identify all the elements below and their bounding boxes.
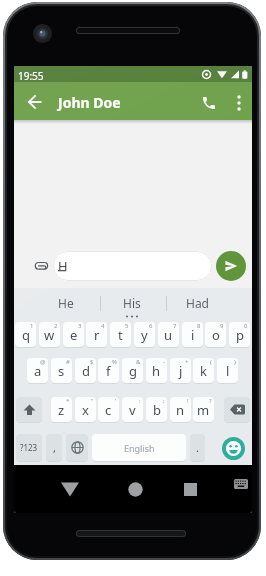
staticText: m xyxy=(197,401,210,419)
button[interactable]: s xyxy=(51,358,72,383)
button[interactable] xyxy=(23,90,47,114)
button[interactable]: English xyxy=(92,434,186,461)
staticText: x xyxy=(82,401,89,419)
button[interactable] xyxy=(58,477,82,501)
staticText: + xyxy=(185,358,189,366)
staticText: g xyxy=(129,362,137,380)
staticText: z xyxy=(58,401,65,419)
button[interactable]: i xyxy=(182,322,203,347)
button[interactable]: f xyxy=(98,358,119,383)
staticText: d xyxy=(82,362,90,380)
staticText: English xyxy=(124,442,155,454)
staticText: % xyxy=(112,358,117,366)
staticText: # xyxy=(66,358,70,366)
staticText: e xyxy=(70,326,78,344)
button[interactable]: p xyxy=(229,322,250,347)
staticText: @ xyxy=(40,358,46,366)
staticText: 0 xyxy=(244,322,248,330)
staticText: ( xyxy=(210,358,212,366)
staticText: r xyxy=(94,326,100,344)
staticText: ' xyxy=(115,397,117,405)
button[interactable]: w xyxy=(39,322,60,347)
button[interactable]: , xyxy=(46,434,62,461)
staticText: 19:55 xyxy=(18,69,44,83)
button[interactable]: m xyxy=(193,397,214,422)
button[interactable] xyxy=(216,251,246,281)
button[interactable]: c xyxy=(98,397,119,422)
button[interactable]: e xyxy=(63,322,84,347)
staticText: $ xyxy=(90,358,94,366)
button[interactable]: n xyxy=(170,397,191,422)
button[interactable]: H xyxy=(53,251,212,281)
button[interactable]: q xyxy=(15,322,36,347)
button[interactable]: j xyxy=(170,358,191,383)
staticText: q xyxy=(22,326,30,344)
button[interactable] xyxy=(227,91,251,115)
staticText: His xyxy=(123,295,141,311)
button[interactable]: . xyxy=(190,434,205,461)
staticText: 7 xyxy=(173,322,177,330)
button[interactable] xyxy=(123,477,147,501)
staticText: - xyxy=(163,358,165,366)
button[interactable]: l xyxy=(217,358,238,383)
button[interactable] xyxy=(178,477,202,501)
staticText: y xyxy=(141,326,148,344)
staticText: 8 xyxy=(197,322,201,330)
button[interactable]: d xyxy=(75,358,96,383)
button[interactable]: u xyxy=(158,322,179,347)
button[interactable]: ?123 xyxy=(16,434,42,461)
staticText: Had xyxy=(186,295,210,311)
staticText: w xyxy=(44,326,55,344)
button[interactable]: h xyxy=(146,358,167,383)
button[interactable]: r xyxy=(86,322,107,347)
staticText: . xyxy=(196,440,199,455)
button[interactable] xyxy=(16,397,42,422)
button[interactable]: a xyxy=(27,358,48,383)
staticText: k xyxy=(200,362,207,380)
staticText: t xyxy=(118,326,123,344)
staticText: John Doe xyxy=(58,93,121,112)
staticText: " xyxy=(91,397,94,405)
staticText: b xyxy=(153,401,161,419)
button[interactable]: k xyxy=(193,358,214,383)
staticText: ? xyxy=(209,397,212,405)
staticText: f xyxy=(106,362,111,380)
staticText: & xyxy=(136,358,141,366)
staticText: : xyxy=(139,397,141,405)
staticText: * xyxy=(66,397,70,405)
button[interactable] xyxy=(232,476,250,492)
button[interactable] xyxy=(222,437,245,460)
button[interactable]: o xyxy=(205,322,226,347)
staticText: v xyxy=(129,401,136,419)
staticText: ; xyxy=(163,397,165,405)
staticText: u xyxy=(164,326,173,344)
button[interactable]: y xyxy=(134,322,155,347)
staticText: 2 xyxy=(54,322,58,330)
staticText: p xyxy=(236,326,244,344)
staticText: 4 xyxy=(101,322,105,330)
button[interactable]: x xyxy=(75,397,96,422)
button[interactable] xyxy=(224,397,250,422)
staticText: He xyxy=(58,295,74,311)
button[interactable]: b xyxy=(146,397,167,422)
staticText: c xyxy=(105,401,112,419)
button[interactable]: v xyxy=(122,397,143,422)
staticText: 9 xyxy=(220,322,224,330)
staticText: l xyxy=(226,362,230,380)
button[interactable] xyxy=(66,434,88,461)
staticText: a xyxy=(34,362,42,380)
button[interactable]: z xyxy=(51,397,72,422)
staticText: ) xyxy=(234,358,236,366)
staticText: 3 xyxy=(78,322,82,330)
staticText: 6 xyxy=(149,322,153,330)
button[interactable]: t xyxy=(110,322,131,347)
button[interactable] xyxy=(34,259,48,273)
staticText: ! xyxy=(187,397,189,405)
staticText: n xyxy=(176,401,185,419)
staticText: j xyxy=(179,362,183,380)
button[interactable]: g xyxy=(122,358,143,383)
button[interactable] xyxy=(197,91,221,115)
staticText: s xyxy=(58,362,65,380)
staticText: i xyxy=(191,326,195,344)
staticText: 1 xyxy=(30,322,34,330)
